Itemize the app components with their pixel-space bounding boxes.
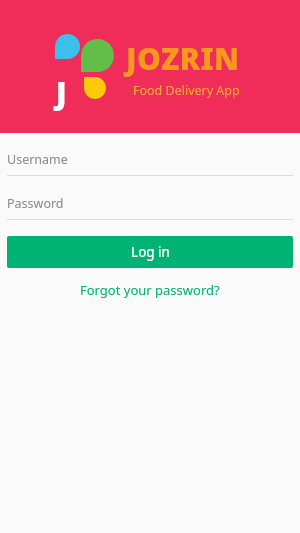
- button[interactable]: Password: [7, 188, 293, 220]
- button[interactable]: Forgot your password?: [7, 277, 293, 303]
- staticText: Password: [7, 195, 64, 212]
- staticText: Food Delivery App: [133, 82, 240, 99]
- button[interactable]: Username: [7, 144, 293, 176]
- staticText: Username: [7, 151, 68, 168]
- staticText: J: [56, 72, 67, 113]
- staticText: Log in: [131, 243, 170, 261]
- staticText: JOZRIN: [126, 38, 240, 79]
- button[interactable]: Log in: [7, 236, 293, 268]
- staticText: Forgot your password?: [80, 281, 220, 299]
